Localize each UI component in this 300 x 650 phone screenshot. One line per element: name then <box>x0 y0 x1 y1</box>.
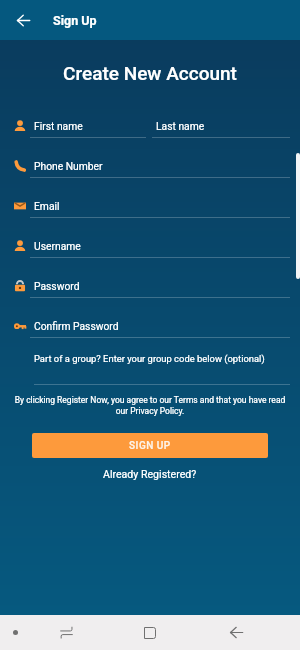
button[interactable]: Username <box>14 235 290 259</box>
staticText: By clicking Register Now, you agree to o… <box>8 395 292 416</box>
staticText: Phone Number <box>34 160 103 172</box>
staticText: SIGN UP <box>129 440 171 452</box>
staticText: Username <box>34 240 81 252</box>
button[interactable]: Back <box>219 615 253 650</box>
button[interactable]: Last name <box>152 115 290 139</box>
button[interactable]: Confirm Password <box>14 315 290 339</box>
button[interactable]: Already Registered? <box>97 465 203 483</box>
staticText: Confirm Password <box>34 320 119 332</box>
button[interactable]: Home <box>133 615 167 650</box>
button[interactable]: Part of a group? Enter your group code b… <box>30 348 290 388</box>
button[interactable]: Menu <box>0 615 32 650</box>
button[interactable]: First name <box>14 115 146 139</box>
staticText: Sign Up <box>53 13 97 28</box>
staticText: First name <box>34 120 83 132</box>
staticText: Email <box>34 200 60 212</box>
staticText: Password <box>34 280 80 292</box>
staticText: Part of a group? Enter your group code b… <box>34 353 265 364</box>
staticText: Already Registered? <box>103 468 197 480</box>
button[interactable]: Phone Number <box>14 155 290 179</box>
staticText: Last name <box>156 120 205 132</box>
button[interactable]: Email <box>14 195 290 219</box>
button[interactable]: Recent apps <box>49 615 83 650</box>
button[interactable]: Password <box>14 275 290 299</box>
button[interactable]: Back <box>0 0 40 40</box>
staticText: Create New Account <box>0 62 300 84</box>
button[interactable]: SIGN UP <box>32 433 268 458</box>
